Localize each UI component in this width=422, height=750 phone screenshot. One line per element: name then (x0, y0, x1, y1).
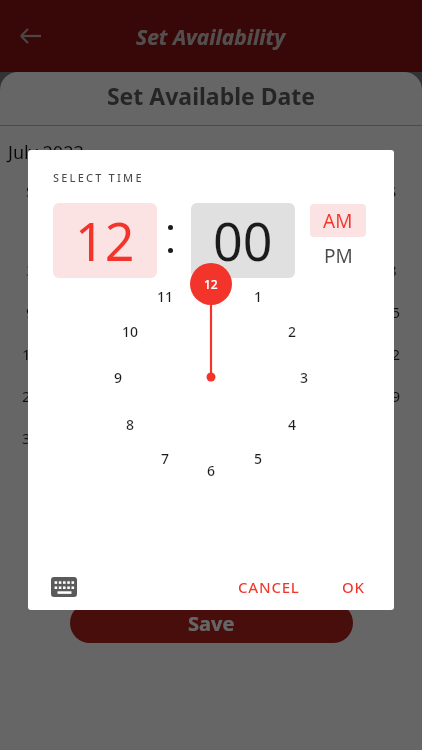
staticText: Save (188, 610, 235, 637)
staticText: 22 (383, 344, 401, 364)
staticText: 4 (148, 260, 157, 280)
staticText: S (26, 181, 35, 201)
staticText: 12 (204, 276, 218, 292)
staticText: 3 (87, 260, 96, 280)
staticText: 6 (268, 260, 277, 280)
staticText: SELECT TIME (53, 170, 144, 185)
staticText: M (85, 181, 99, 201)
staticText: Set Available Date (0, 80, 422, 111)
staticText: 11 (157, 287, 174, 306)
button[interactable]: 12 (53, 203, 157, 278)
staticText: 15 (383, 302, 401, 322)
staticText: AM (323, 208, 353, 234)
staticText: CANCEL (238, 577, 300, 597)
staticText: 19 (203, 344, 221, 364)
button[interactable]: CANCEL (228, 569, 310, 605)
staticText: July 2023 (8, 140, 84, 165)
staticText: 5 (208, 260, 217, 280)
staticText: 12 (75, 205, 135, 276)
button[interactable]: PM (310, 239, 366, 272)
staticText: 2 (26, 260, 35, 280)
staticText: 9 (26, 302, 35, 322)
staticText: 29 (383, 386, 401, 406)
staticText: 3 (300, 368, 309, 387)
staticText: 8 (126, 415, 135, 434)
staticText: OK (342, 577, 365, 597)
staticText: PM (324, 243, 353, 269)
staticText: 6 (207, 461, 216, 480)
staticText: 12 (203, 302, 221, 322)
staticText: S (388, 181, 397, 201)
staticText: 10 (122, 322, 139, 341)
staticText: 1 (254, 287, 263, 306)
staticText: Set Availability (136, 23, 286, 52)
button[interactable]: AM (310, 204, 366, 237)
staticText: 9 (114, 368, 123, 387)
staticText: 16 (22, 344, 40, 364)
button[interactable]: OK (332, 569, 375, 605)
button[interactable]: 00 (191, 203, 295, 278)
staticText: 4 (288, 415, 297, 434)
staticText: 1 (388, 218, 397, 238)
staticText: 30 (22, 428, 40, 448)
staticText: 7 (161, 449, 170, 468)
staticText: 23 (22, 386, 40, 406)
staticText: 8 (388, 260, 397, 280)
staticText: 00 (213, 205, 273, 276)
staticText: 5 (254, 449, 263, 468)
button[interactable]: Save (70, 603, 353, 643)
button[interactable]: Keyboard input (46, 569, 82, 605)
button[interactable]: Back (8, 14, 52, 58)
staticText: 2 (288, 322, 297, 341)
